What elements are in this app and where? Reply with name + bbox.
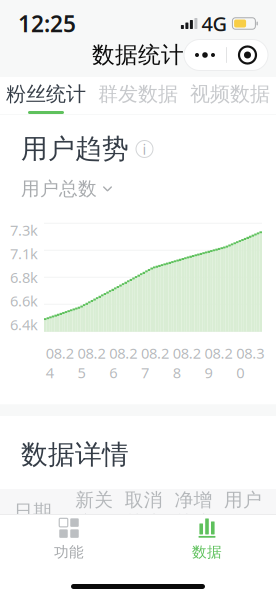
- staticText: 86: [188, 586, 212, 597]
- button[interactable]: 用户总数: [0, 165, 276, 200]
- staticText: 133: [176, 542, 212, 570]
- staticText: 4G: [201, 10, 227, 37]
- staticText: 08.25: [78, 343, 106, 382]
- staticText: 视频数据: [190, 82, 270, 106]
- button[interactable]: 粉丝统计: [0, 77, 92, 114]
- staticText: 08.30: [236, 343, 264, 382]
- staticText: 08.27: [141, 343, 169, 382]
- button[interactable]: 视频数据: [184, 77, 276, 114]
- staticText: 净增关注: [174, 489, 212, 534]
- button[interactable]: 群发数据: [92, 77, 184, 114]
- staticText: 7255: [214, 542, 262, 570]
- staticText: 用户总数: [224, 489, 262, 534]
- staticText: 数据详情: [21, 438, 129, 471]
- staticText: i: [142, 139, 146, 159]
- staticText: 数据统计: [92, 41, 184, 69]
- staticText: 功能: [54, 543, 84, 561]
- staticText: 新关注: [75, 489, 113, 534]
- staticText: 158: [77, 542, 113, 570]
- staticText: 数据: [192, 543, 222, 561]
- staticText: 28: [139, 586, 163, 597]
- staticText: 6.6k: [10, 291, 38, 311]
- staticText: 7.3k: [10, 220, 38, 240]
- button[interactable]: 功能: [0, 515, 138, 564]
- staticText: 12:25: [18, 8, 76, 38]
- button[interactable]: More and Close: [184, 39, 268, 70]
- staticText: 6.4k: [10, 315, 38, 334]
- staticText: 日期: [14, 500, 52, 523]
- staticText: 7.1k: [10, 244, 38, 263]
- staticText: 6.8k: [10, 267, 38, 287]
- button[interactable]: 数据: [138, 515, 276, 564]
- staticText: 群发数据: [98, 82, 178, 106]
- staticText: 用户总数: [21, 177, 97, 200]
- staticText: 114: [77, 586, 113, 597]
- staticText: 08.29: [204, 343, 232, 382]
- staticText: 08.24: [46, 343, 74, 382]
- staticText: 粉丝统计: [6, 82, 86, 106]
- staticText: 取消关注: [125, 489, 163, 534]
- button[interactable]: 说明: [136, 140, 153, 157]
- staticText: 08.26: [109, 343, 137, 382]
- staticText: 08.28: [173, 343, 201, 382]
- staticText: 用户趋势: [21, 133, 129, 165]
